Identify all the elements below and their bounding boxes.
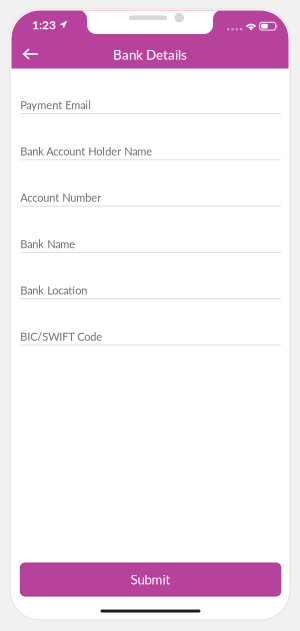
staticText: Bank Location <box>20 284 87 297</box>
staticText: Payment Email <box>20 99 91 111</box>
button[interactable]: Back <box>13 39 47 69</box>
staticText: Bank Details <box>113 47 187 62</box>
staticText: BIC/SWIFT Code <box>20 330 102 343</box>
button[interactable]: Submit <box>20 563 281 596</box>
staticText: 1:23 <box>32 17 56 31</box>
staticText: Submit <box>131 572 171 587</box>
staticText: Bank Name <box>20 237 75 250</box>
staticText: Bank Account Holder Name <box>20 145 152 158</box>
staticText: Account Number <box>20 191 101 204</box>
